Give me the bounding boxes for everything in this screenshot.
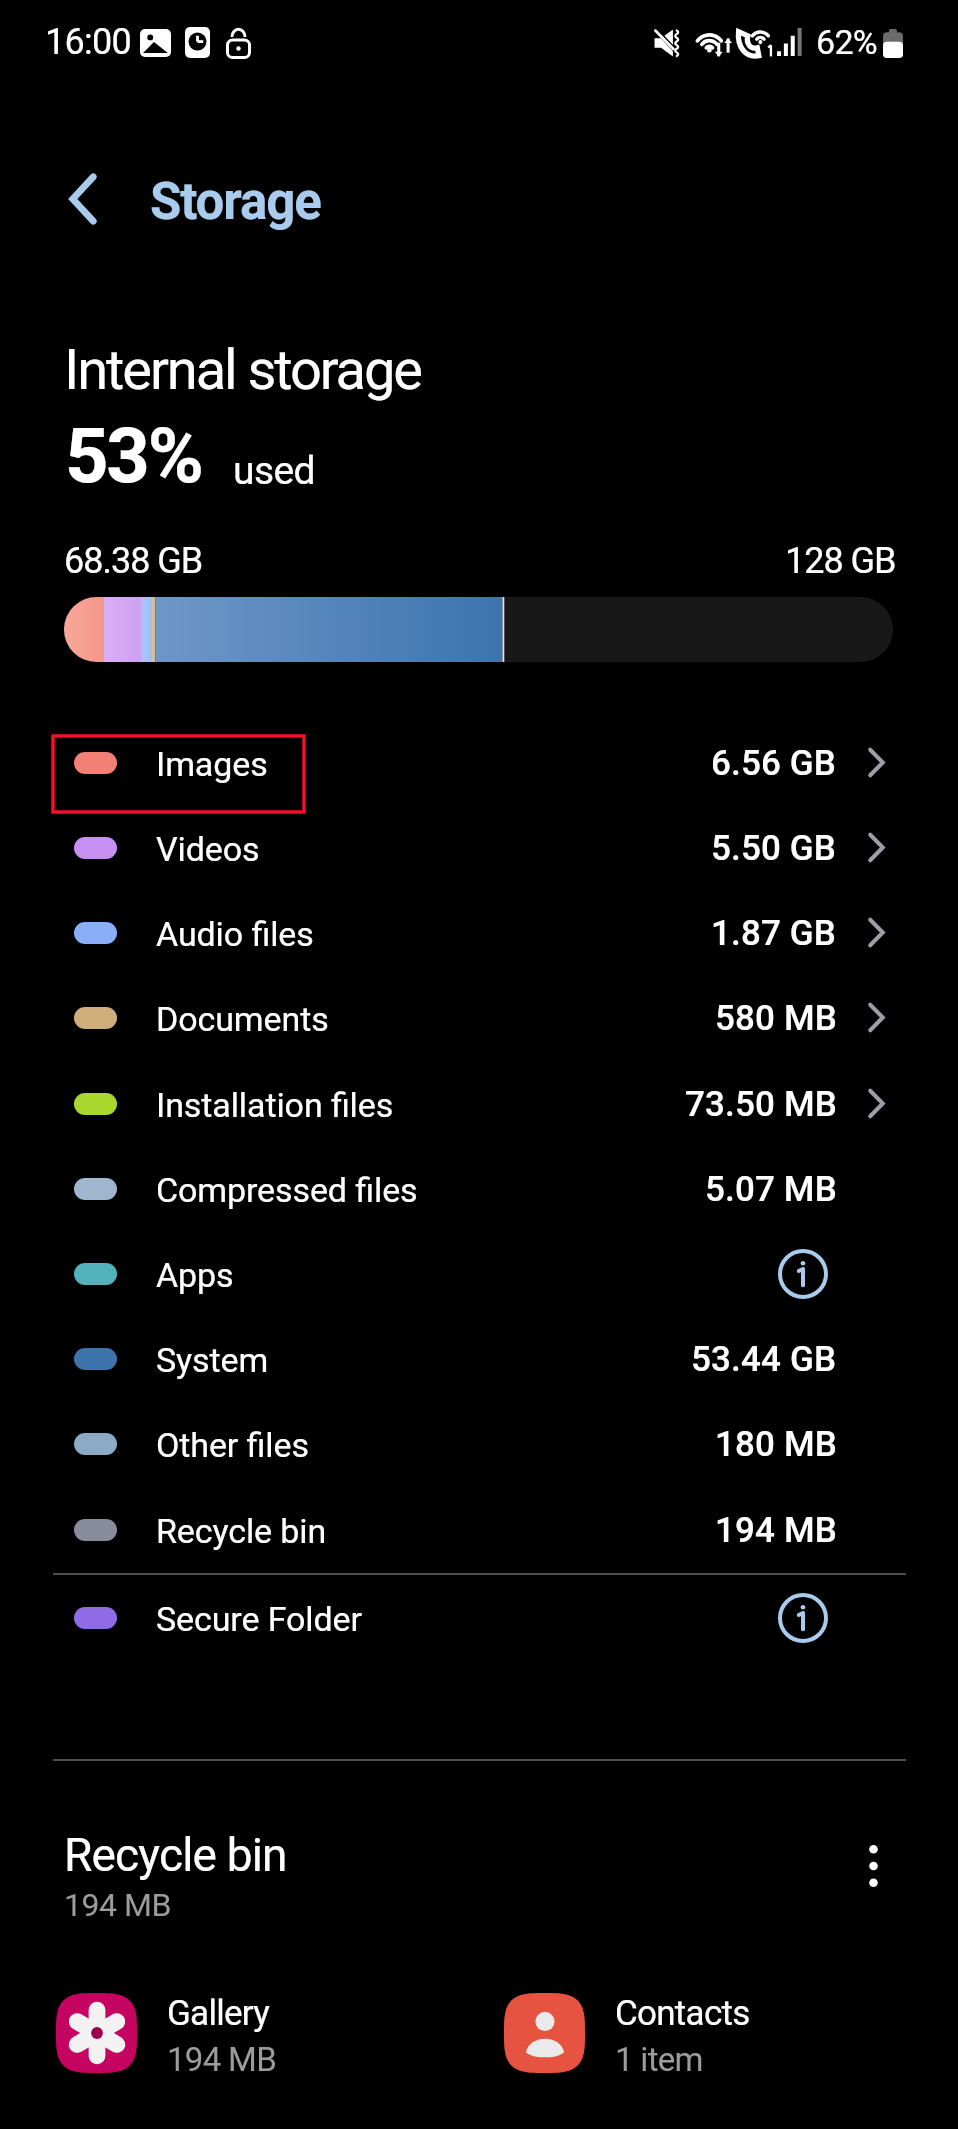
button[interactable]: Secure Folder: [0, 1575, 958, 1660]
staticText: 580 MB: [715, 998, 837, 1039]
staticText: 128 GB: [785, 540, 896, 582]
staticText: 194 MB: [167, 2040, 277, 2073]
button[interactable]: System: [0, 1316, 958, 1401]
staticText: Recycle bin: [64, 1828, 287, 1882]
button[interactable]: Gallery: [56, 1993, 386, 2073]
button[interactable]: Apps: [0, 1231, 958, 1316]
staticText: Internal storage: [64, 337, 421, 403]
button[interactable]: More information: [772, 1243, 834, 1305]
staticText: Storage: [150, 172, 321, 232]
staticText: 16:00: [45, 21, 131, 63]
staticText: 53.44 GB: [691, 1339, 837, 1380]
staticText: System: [156, 1340, 269, 1380]
staticText: Images: [156, 744, 268, 784]
button[interactable]: Installation files: [0, 1061, 958, 1146]
staticText: Apps: [156, 1255, 234, 1295]
button[interactable]: Videos: [0, 805, 958, 890]
staticText: 73.50 MB: [685, 1084, 837, 1125]
button[interactable]: Other files: [0, 1401, 958, 1486]
staticText: 194 MB: [715, 1510, 837, 1551]
button[interactable]: More options: [840, 1833, 906, 1899]
button[interactable]: Images: [0, 720, 958, 805]
staticText: 1 item: [615, 2040, 703, 2073]
button[interactable]: Recycle bin: [0, 1487, 958, 1572]
staticText: Compressed files: [156, 1170, 418, 1210]
staticText: 6.56 GB: [711, 743, 837, 784]
staticText: 5.50 GB: [711, 828, 837, 869]
staticText: Installation files: [156, 1085, 394, 1125]
button[interactable]: Audio files: [0, 890, 958, 975]
button[interactable]: Documents: [0, 975, 958, 1060]
staticText: 1.87 GB: [711, 913, 837, 954]
staticText: Documents: [156, 999, 329, 1039]
staticText: Recycle bin: [156, 1511, 327, 1551]
staticText: used: [233, 448, 315, 494]
staticText: 62%: [816, 22, 877, 62]
staticText: 53%: [65, 411, 202, 500]
staticText: Other files: [156, 1425, 309, 1465]
staticText: 180 MB: [715, 1424, 837, 1465]
staticText: Secure Folder: [156, 1599, 362, 1639]
button[interactable]: Contacts: [504, 1993, 834, 2073]
staticText: Gallery: [167, 1993, 270, 2034]
staticText: Audio files: [156, 914, 314, 954]
staticText: 5.07 MB: [705, 1169, 837, 1210]
button[interactable]: More information: [772, 1587, 834, 1649]
staticText: 68.38 GB: [64, 540, 203, 582]
button[interactable]: Compressed files: [0, 1146, 958, 1231]
staticText: Contacts: [615, 1993, 750, 2034]
staticText: 194 MB: [64, 1886, 172, 1924]
button[interactable]: Back: [42, 158, 124, 240]
staticText: Videos: [156, 829, 260, 869]
